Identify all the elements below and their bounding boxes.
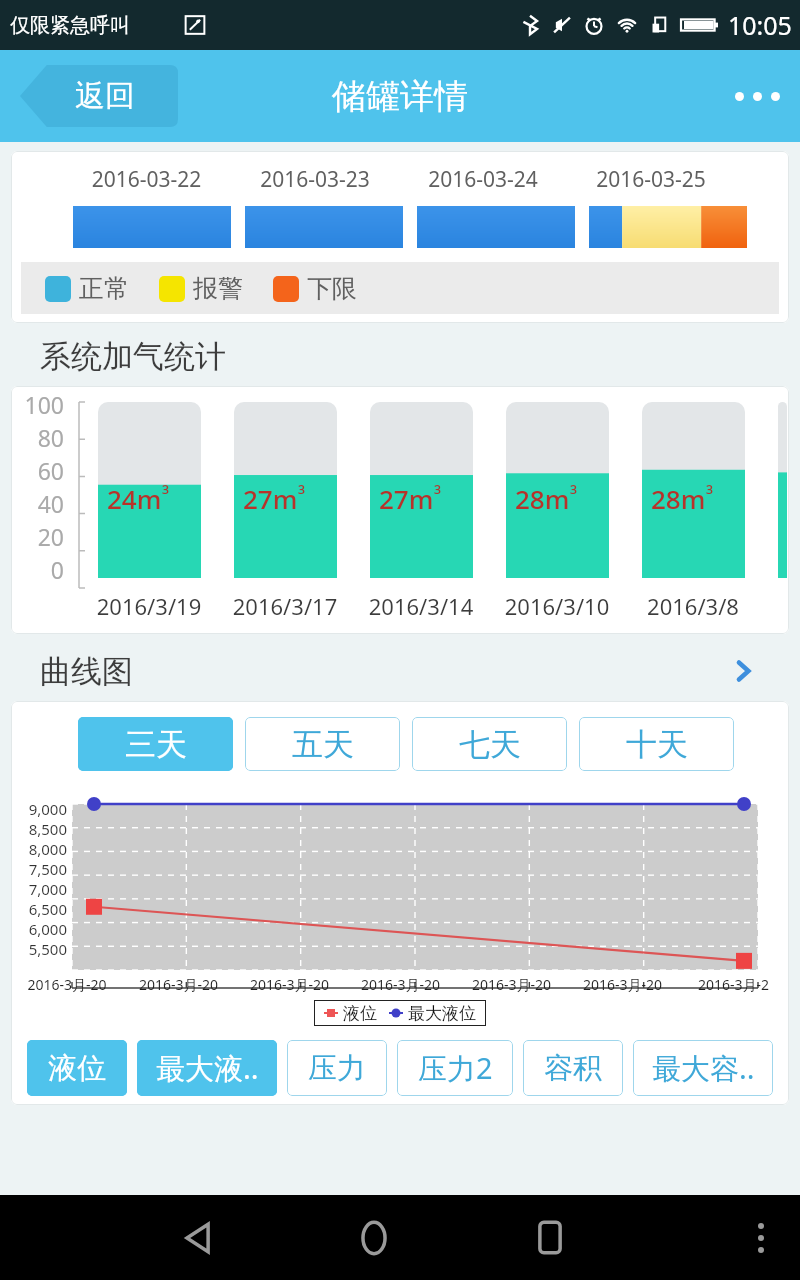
staticText: 液位 [48, 1050, 106, 1087]
staticText: 液位 [343, 1003, 377, 1024]
staticText: 最大液位 [408, 1003, 476, 1024]
button[interactable]: 最大液.. [137, 1040, 277, 1096]
button[interactable]: 三天 [78, 717, 233, 771]
staticText: 6,500 [11, 899, 67, 919]
staticText: 最大液.. [156, 1048, 259, 1088]
staticText: 2016-03-23 [231, 165, 399, 194]
staticText: 8,500 [11, 819, 67, 839]
staticText: ³ [162, 481, 169, 508]
staticText: 正常 [79, 273, 129, 304]
staticText: 返回 [75, 77, 135, 115]
staticText: 仅限紧急呼叫 [10, 13, 130, 38]
staticText: 7,500 [11, 859, 67, 879]
button[interactable]: Recents [527, 1215, 573, 1261]
staticText: 2016-3月-20 [11, 975, 123, 994]
button[interactable]: Home [351, 1215, 397, 1261]
staticText: 2016/3/14 [354, 591, 488, 621]
button[interactable]: 返回 [14, 65, 178, 127]
staticText: 2016-3月-2 [678, 975, 789, 994]
staticText: 最大容.. [652, 1048, 755, 1088]
staticText: 容积 [544, 1050, 602, 1087]
staticText: 10:05 [728, 8, 792, 42]
staticText: 0 [11, 554, 64, 585]
staticText: 报警 [193, 273, 243, 304]
staticText: 五天 [292, 725, 354, 764]
staticText: 曲线图 [40, 652, 133, 691]
button[interactable]: Back [175, 1215, 221, 1261]
staticText: 2016-3月-20 [234, 975, 345, 994]
button[interactable]: More options [735, 92, 780, 101]
staticText: 2016-3月-20 [456, 975, 567, 994]
staticText: 5,500 [11, 939, 67, 959]
staticText: ³ [298, 481, 305, 508]
button[interactable]: 五天 [245, 717, 400, 771]
staticText: 20 [11, 521, 64, 552]
staticText: 2016/3/19 [82, 591, 216, 621]
staticText: 系统加气统计 [40, 337, 226, 376]
staticText: 100 [11, 389, 64, 420]
staticText: 27m [379, 481, 434, 516]
staticText: 2016-3月-20 [345, 975, 456, 994]
button[interactable]: 七天 [412, 717, 567, 771]
staticText: 2016-3月-20 [123, 975, 234, 994]
staticText: 8,000 [11, 839, 67, 859]
staticText: 2016/3/17 [218, 591, 352, 621]
button[interactable]: 液位 [27, 1040, 127, 1096]
staticText: 七天 [459, 725, 521, 764]
staticText: 28m [651, 481, 706, 516]
staticText: 2016/3/10 [490, 591, 624, 621]
button[interactable]: 压力2 [397, 1040, 513, 1096]
staticText: 2016-03-22 [62, 165, 231, 194]
button[interactable]: More [726, 654, 760, 688]
staticText: 三天 [125, 725, 187, 764]
staticText: 下限 [307, 273, 357, 304]
staticText: 7,000 [11, 879, 67, 899]
staticText: 十天 [626, 725, 688, 764]
staticText: 2016-03-24 [399, 165, 567, 194]
button[interactable]: 十天 [579, 717, 734, 771]
staticText: 9,000 [11, 799, 67, 819]
staticText: 28m [515, 481, 570, 516]
staticText: 压力 [308, 1050, 366, 1087]
staticText: 24m [107, 481, 162, 516]
staticText: 60 [11, 455, 64, 486]
staticText: 2016/3/8 [626, 591, 760, 621]
staticText: 储罐详情 [332, 75, 468, 118]
staticText: 2016-03-25 [567, 165, 735, 194]
staticText: 6,000 [11, 919, 67, 939]
staticText: 80 [11, 422, 64, 453]
button[interactable]: 压力 [287, 1040, 387, 1096]
button[interactable]: Menu [758, 1223, 764, 1253]
staticText: ³ [434, 481, 441, 508]
staticText: ³ [706, 481, 713, 508]
button[interactable]: 最大容.. [633, 1040, 773, 1096]
staticText: ³ [570, 481, 577, 508]
staticText: 40 [11, 488, 64, 519]
staticText: 压力2 [418, 1048, 493, 1088]
button[interactable]: 容积 [523, 1040, 623, 1096]
staticText: 27m [243, 481, 298, 516]
staticText: 2016-3月-20 [567, 975, 678, 994]
